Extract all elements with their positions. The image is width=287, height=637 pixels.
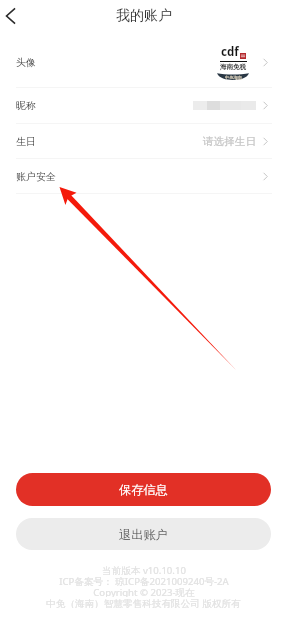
- button[interactable]: 退出账户: [16, 518, 271, 550]
- staticText: Copyright © 2023-现在: [93, 586, 195, 597]
- staticText: 退出账户: [119, 527, 168, 542]
- button[interactable]: Back: [0, 0, 26, 30]
- staticText: ICP备案号： 琼ICP备2021009240号-2A: [59, 575, 229, 586]
- button[interactable]: 头像: [0, 37, 287, 87]
- staticText: 中免海南: [225, 75, 242, 80]
- staticText: 中免（海南）智慧零售科技有限公司 版权所有: [46, 597, 241, 608]
- staticText: cdf: [221, 44, 239, 60]
- staticText: 当前版本 v10.10.10: [102, 564, 186, 575]
- staticText: 生日: [16, 135, 36, 148]
- button[interactable]: 账户安全: [0, 159, 287, 193]
- button[interactable]: 生日: [0, 124, 287, 158]
- staticText: 海南免税: [220, 63, 246, 71]
- staticText: 我的账户: [116, 7, 172, 25]
- staticText: 账户安全: [16, 170, 56, 183]
- staticText: 保存信息: [119, 482, 168, 497]
- staticText: 请选择生日: [203, 135, 256, 148]
- staticText: 昵称: [16, 99, 36, 112]
- staticText: 头像: [16, 56, 36, 69]
- button[interactable]: 昵称: [0, 88, 287, 123]
- button[interactable]: 保存信息: [16, 473, 271, 506]
